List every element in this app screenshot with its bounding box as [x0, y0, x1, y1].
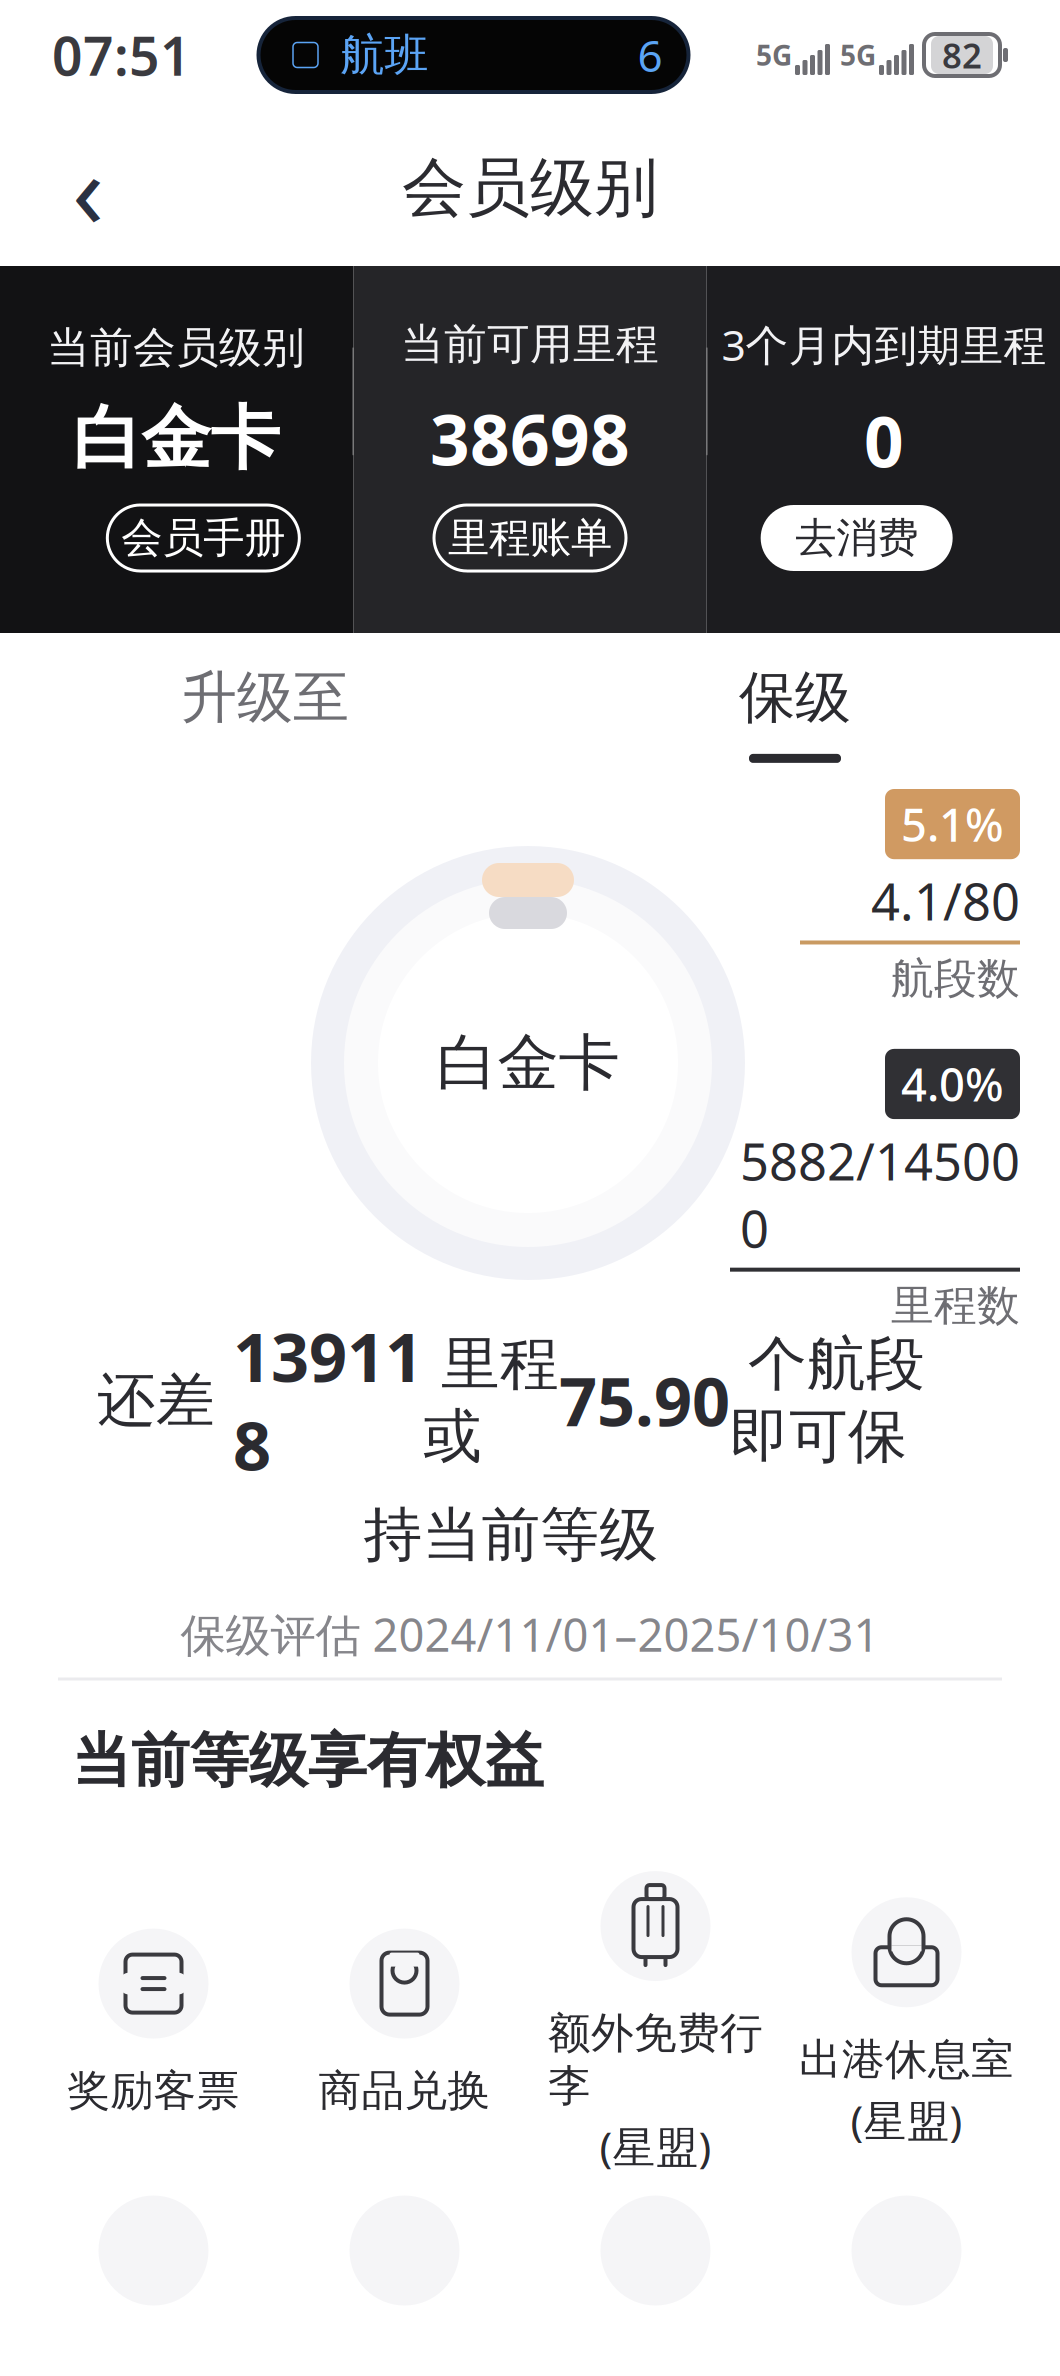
button[interactable]: 返回 — [40, 140, 136, 236]
staticText: 当前等级享有权益 — [72, 1725, 544, 1797]
staticText: 139118 — [233, 1312, 423, 1489]
staticText: 奖励客票 — [67, 2065, 239, 2117]
staticText: 5.1% — [901, 794, 1004, 854]
button[interactable]: 会员手册 — [107, 505, 299, 571]
button[interactable]: 奖励客票 — [28, 1929, 279, 2117]
button[interactable]: 商品兑换 — [279, 1929, 530, 2117]
button[interactable]: 去消费 — [761, 505, 953, 571]
staticText: 6 — [637, 26, 662, 84]
staticText: 商品兑换 — [318, 2065, 490, 2117]
staticText: 持当前等级 — [363, 1499, 658, 1571]
staticText: 82 — [942, 32, 982, 78]
staticText: 会员手册 — [121, 513, 285, 563]
button[interactable]: 保级 — [530, 633, 1060, 783]
staticText: 38698 — [430, 392, 630, 485]
staticText: 白金卡 — [436, 1025, 619, 1101]
staticText: 3个月内到期里程 — [721, 316, 1046, 373]
staticText: 升级至 — [181, 663, 349, 732]
staticText: 航段数 — [891, 952, 1020, 1005]
staticText: 4.1/80 — [871, 867, 1020, 934]
staticText: 去消费 — [795, 513, 918, 563]
staticText: 5G — [840, 36, 876, 74]
staticText: ‹ — [72, 119, 104, 257]
button[interactable]: 额外免费行李 — [530, 1871, 781, 2175]
button[interactable]: 升级至 — [0, 633, 530, 783]
staticText: 0 — [864, 395, 904, 487]
staticText: 会员级别 — [402, 149, 658, 227]
staticText: 出港休息室 — [799, 2033, 1014, 2086]
staticText: (星盟) — [599, 2118, 711, 2175]
staticText: 5G — [756, 36, 792, 74]
button[interactable]: 里程账单 — [434, 505, 626, 571]
staticText: 航班 — [340, 28, 428, 82]
staticText: 还差 — [97, 1364, 233, 1436]
staticText: 当前可用里程 — [401, 318, 659, 370]
staticText: 个航段即可保 — [730, 1328, 925, 1472]
staticText: 里程数 — [891, 1280, 1020, 1332]
button[interactable]: 出港休息室 — [781, 1897, 1032, 2148]
staticText: 4.0% — [901, 1054, 1004, 1114]
staticText: (星盟) — [850, 2092, 962, 2148]
staticText: 5882/145000 — [740, 1127, 1020, 1262]
staticText: 当前会员级别 — [47, 322, 305, 374]
staticText: 75.90 — [559, 1356, 730, 1445]
staticText: 保级 — [739, 663, 851, 732]
staticText: 白金卡 — [72, 396, 279, 481]
staticText: 里程账单 — [448, 513, 612, 563]
staticText: 额外免费行李 — [548, 2007, 763, 2112]
staticText: 保级评估 2024/11/01–2025/10/31 — [180, 1604, 879, 1664]
staticText: 07:51 — [52, 20, 191, 90]
staticText: 里程或 — [423, 1328, 559, 1472]
